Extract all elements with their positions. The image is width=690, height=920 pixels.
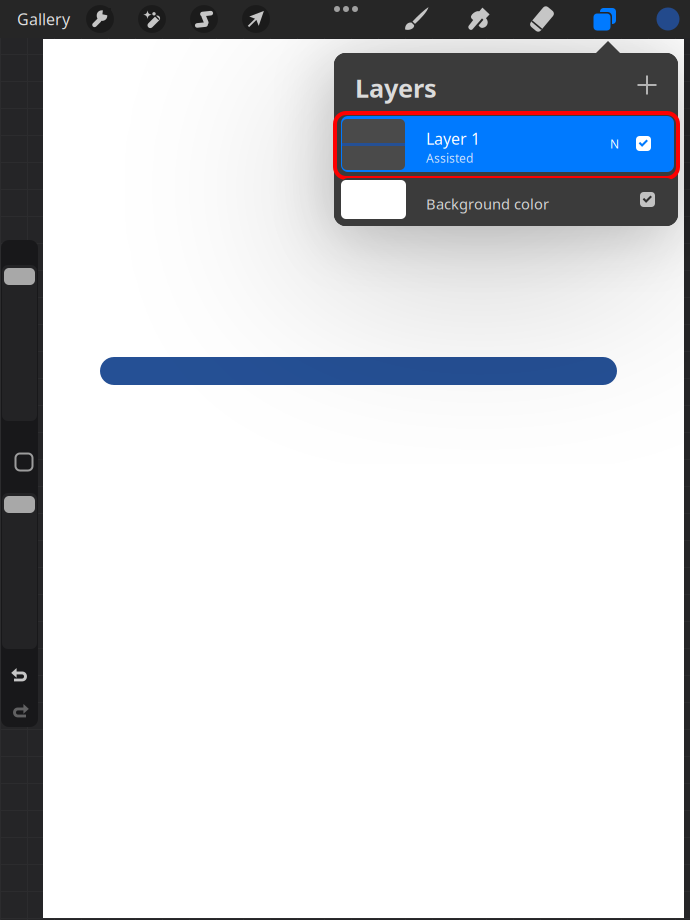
button[interactable]: Opacity <box>2 493 37 649</box>
button[interactable]: Transform <box>230 0 282 38</box>
button[interactable]: Undo <box>10 663 30 687</box>
button[interactable]: Adjustments <box>126 0 178 38</box>
button[interactable]: Colour <box>646 0 690 38</box>
button[interactable]: Redo <box>10 699 30 723</box>
button[interactable]: Layer 1 <box>341 116 674 172</box>
staticText: Layers <box>355 71 437 105</box>
staticText: Background color <box>426 194 549 213</box>
button[interactable]: Brush size <box>2 265 37 421</box>
button[interactable]: Modify <box>11 449 37 475</box>
button[interactable]: Smudge <box>454 0 506 38</box>
staticText: N <box>610 136 619 152</box>
staticText: Assisted <box>426 150 473 166</box>
button[interactable]: Actions <box>74 0 126 38</box>
button[interactable]: Background color <box>341 178 674 222</box>
staticText: Gallery <box>17 8 70 30</box>
button[interactable]: Layers <box>579 0 631 38</box>
button[interactable]: Layers <box>355 68 437 108</box>
button[interactable]: Paint <box>391 0 443 38</box>
button[interactable]: Add layer <box>625 63 669 107</box>
button[interactable]: Gallery <box>5 0 82 38</box>
staticText: Layer 1 <box>426 128 480 149</box>
button[interactable]: Erase <box>516 0 568 38</box>
button[interactable]: Selection <box>178 0 230 38</box>
